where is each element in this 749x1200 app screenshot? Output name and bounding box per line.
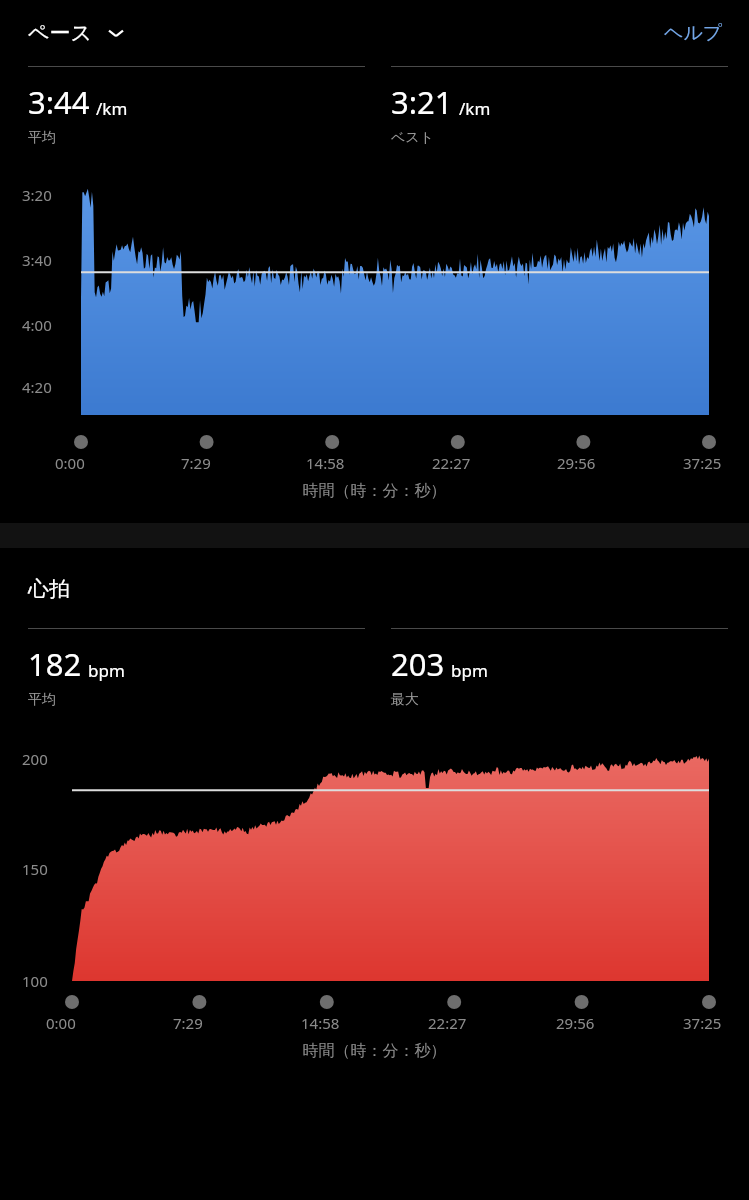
staticText: 3:44	[28, 81, 90, 123]
staticText: 200	[22, 749, 48, 769]
staticText: 3:20	[22, 185, 52, 205]
staticText: 14:58	[306, 453, 345, 473]
staticText: 3:21	[391, 81, 453, 123]
staticText: bpm	[88, 659, 125, 682]
staticText: ペース	[28, 20, 92, 46]
staticText: 22:27	[428, 1013, 467, 1033]
staticText: 心拍	[28, 576, 70, 602]
staticText: 4:00	[22, 315, 52, 335]
button[interactable]: ヘルプ	[660, 15, 727, 51]
staticText: 平均	[28, 129, 56, 147]
staticText: 最大	[391, 691, 419, 709]
staticText: ヘルプ	[664, 21, 723, 45]
staticText: 203	[391, 643, 445, 685]
staticText: 時間（時：分：秒）	[0, 1041, 749, 1061]
staticText: 29:56	[556, 1013, 595, 1033]
staticText: 7:29	[181, 453, 211, 473]
staticText: 100	[22, 971, 48, 991]
staticText: /km	[459, 97, 491, 120]
button[interactable]: ペース	[28, 20, 126, 46]
staticText: 時間（時：分：秒）	[0, 481, 749, 501]
staticText: 3:40	[22, 250, 52, 270]
staticText: 37:25	[683, 1013, 722, 1033]
staticText: 150	[22, 859, 48, 879]
staticText: 29:56	[557, 453, 596, 473]
staticText: 4:20	[22, 377, 52, 397]
staticText: ベスト	[391, 129, 434, 147]
staticText: /km	[96, 97, 128, 120]
staticText: 7:29	[173, 1013, 203, 1033]
staticText: 22:27	[432, 453, 471, 473]
staticText: 37:25	[683, 453, 722, 473]
staticText: 14:58	[301, 1013, 340, 1033]
staticText: 0:00	[55, 453, 85, 473]
staticText: 182	[28, 643, 82, 685]
staticText: bpm	[451, 659, 488, 682]
staticText: 平均	[28, 691, 56, 709]
staticText: 0:00	[46, 1013, 76, 1033]
